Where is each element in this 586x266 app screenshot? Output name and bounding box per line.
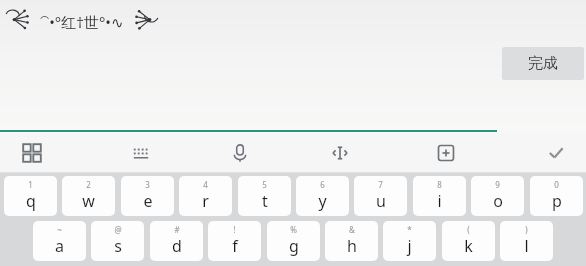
button[interactable]: 1 [4, 176, 57, 216]
staticText: t [262, 190, 268, 212]
button[interactable]: ( [442, 221, 495, 261]
staticText: # [174, 224, 180, 235]
staticText: ) [525, 224, 528, 235]
staticText: 8 [437, 179, 442, 190]
staticText: 0 [554, 179, 559, 190]
staticText: 6 [320, 179, 325, 190]
staticText: q [26, 190, 36, 212]
staticText: i [437, 190, 442, 212]
button[interactable]: 完成 [502, 47, 584, 80]
staticText: j [407, 235, 412, 257]
button[interactable]: Move cursor [320, 137, 360, 169]
staticText: 5 [262, 179, 267, 190]
staticText: u [376, 190, 386, 212]
staticText: l [524, 235, 529, 257]
staticText: h [347, 235, 357, 257]
staticText: 7 [378, 179, 383, 190]
button[interactable]: Voice input [220, 137, 260, 169]
staticText: g [289, 235, 299, 257]
staticText: w [82, 190, 95, 212]
button[interactable]: # [150, 221, 203, 261]
button[interactable]: Grid [12, 137, 52, 169]
staticText: r [202, 190, 209, 212]
staticText: f [232, 235, 238, 257]
staticText: @ [114, 224, 122, 235]
staticText: 完成 [528, 54, 558, 73]
button[interactable]: 8 [413, 176, 466, 216]
button[interactable]: 0 [530, 176, 583, 216]
staticText: 2 [86, 179, 91, 190]
button[interactable]: Keyboard [121, 137, 161, 169]
button[interactable]: 5 [238, 176, 291, 216]
button[interactable]: 6 [296, 176, 349, 216]
staticText: 4 [203, 179, 208, 190]
button[interactable]: 3 [121, 176, 174, 216]
staticText: p [552, 190, 562, 212]
staticText: 1 [28, 179, 33, 190]
button[interactable]: 9 [471, 176, 524, 216]
button[interactable]: Add [426, 137, 466, 169]
button[interactable]: Done [536, 137, 576, 169]
staticText: ( [467, 224, 470, 235]
staticText: s [114, 235, 122, 257]
button[interactable]: ! [208, 221, 261, 261]
staticText: o [493, 190, 503, 212]
staticText: ⁀•°红†世°•∿ [40, 12, 124, 32]
staticText: 9 [495, 179, 500, 190]
staticText: y [318, 190, 327, 212]
staticText: a [55, 235, 64, 257]
staticText: e [143, 190, 153, 212]
button[interactable]: 4 [179, 176, 232, 216]
staticText: ! [233, 224, 236, 235]
button[interactable]: ~ [33, 221, 86, 261]
button[interactable]: & [325, 221, 378, 261]
staticText: % [290, 224, 297, 235]
button[interactable]: 7 [354, 176, 407, 216]
staticText: & [349, 224, 355, 235]
staticText: d [172, 235, 182, 257]
staticText: 3 [145, 179, 150, 190]
button[interactable]: * [383, 221, 436, 261]
staticText: * [407, 224, 412, 235]
button[interactable]: % [267, 221, 320, 261]
staticText: ~ [57, 224, 62, 235]
staticText: k [464, 235, 473, 257]
button[interactable]: ) [500, 221, 553, 261]
button[interactable]: @ [91, 221, 144, 261]
button[interactable]: 2 [62, 176, 115, 216]
